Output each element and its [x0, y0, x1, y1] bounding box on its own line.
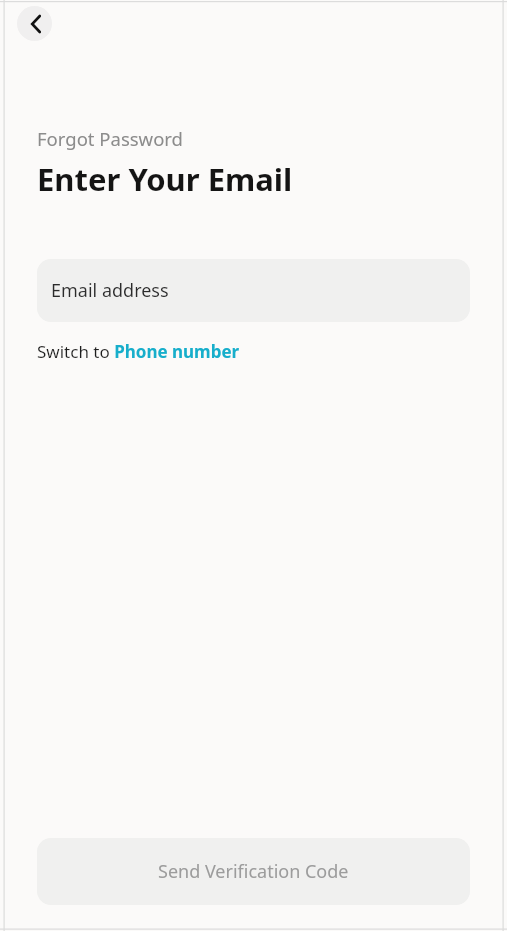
button[interactable]: Email address [37, 259, 470, 322]
button[interactable]: Back [17, 6, 52, 41]
staticText: Switch to Phone number [37, 340, 240, 363]
button[interactable]: Switch to Phone number [37, 336, 240, 367]
button[interactable]: Send Verification Code [37, 838, 470, 905]
staticText: Enter Your Email [37, 158, 293, 200]
staticText: Send Verification Code [158, 859, 349, 884]
staticText: Forgot Password [37, 126, 183, 151]
staticText: Email address [51, 278, 169, 303]
